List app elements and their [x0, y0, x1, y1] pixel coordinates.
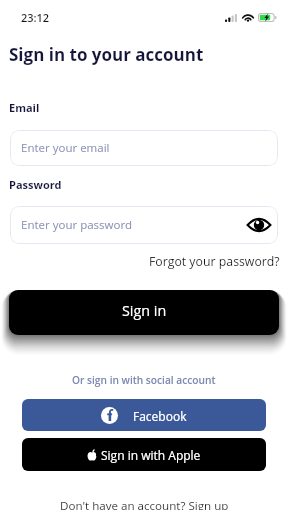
- button[interactable]: Sign in: [9, 290, 279, 335]
- staticText: Password: [9, 177, 62, 192]
- staticText: Email: [9, 100, 40, 115]
- staticText: Facebook: [133, 408, 187, 424]
- staticText: Sign in: [122, 301, 167, 320]
- button[interactable]: Enter your email: [10, 130, 278, 166]
- button[interactable]: Don't have an account? Sign up: [54, 496, 235, 512]
- button[interactable]: Sign in with Apple: [22, 438, 266, 471]
- staticText: Or sign in with social account: [72, 373, 216, 387]
- staticText: 23:12: [21, 10, 50, 25]
- staticText: Sign in with Apple: [101, 447, 201, 463]
- staticText: Enter your password: [21, 217, 132, 233]
- staticText: Don't have an account? Sign up: [60, 498, 229, 510]
- button[interactable]: Enter your password: [10, 206, 278, 244]
- button[interactable]: Facebook: [22, 399, 266, 431]
- button[interactable]: Forgot your password?: [141, 251, 288, 272]
- button[interactable]: Show password: [246, 212, 272, 238]
- staticText: Enter your email: [21, 140, 110, 156]
- staticText: Forgot your password?: [149, 253, 280, 270]
- staticText: Sign in to your account: [9, 43, 204, 66]
